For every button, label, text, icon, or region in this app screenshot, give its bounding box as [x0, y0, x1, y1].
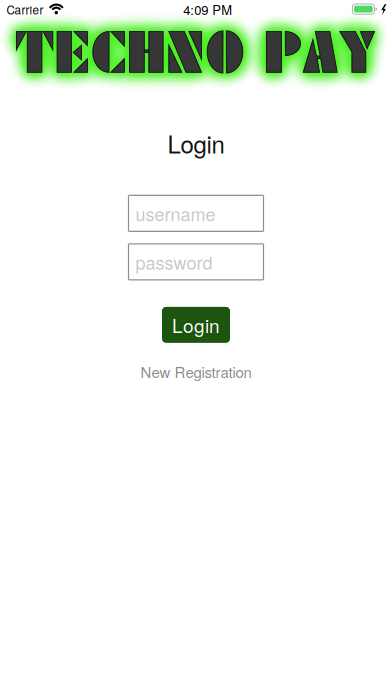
- staticText: username: [135, 200, 215, 226]
- staticText: Login: [167, 126, 224, 160]
- staticText: Carrier: [7, 1, 44, 18]
- staticText: Login: [172, 311, 220, 338]
- button[interactable]: New Registration: [140, 361, 251, 382]
- staticText: password: [135, 249, 212, 275]
- button[interactable]: password: [128, 244, 263, 280]
- button[interactable]: username: [128, 195, 263, 231]
- staticText: 4:09 PM: [183, 0, 232, 19]
- button[interactable]: Login: [162, 307, 230, 343]
- staticText: New Registration: [140, 361, 251, 382]
